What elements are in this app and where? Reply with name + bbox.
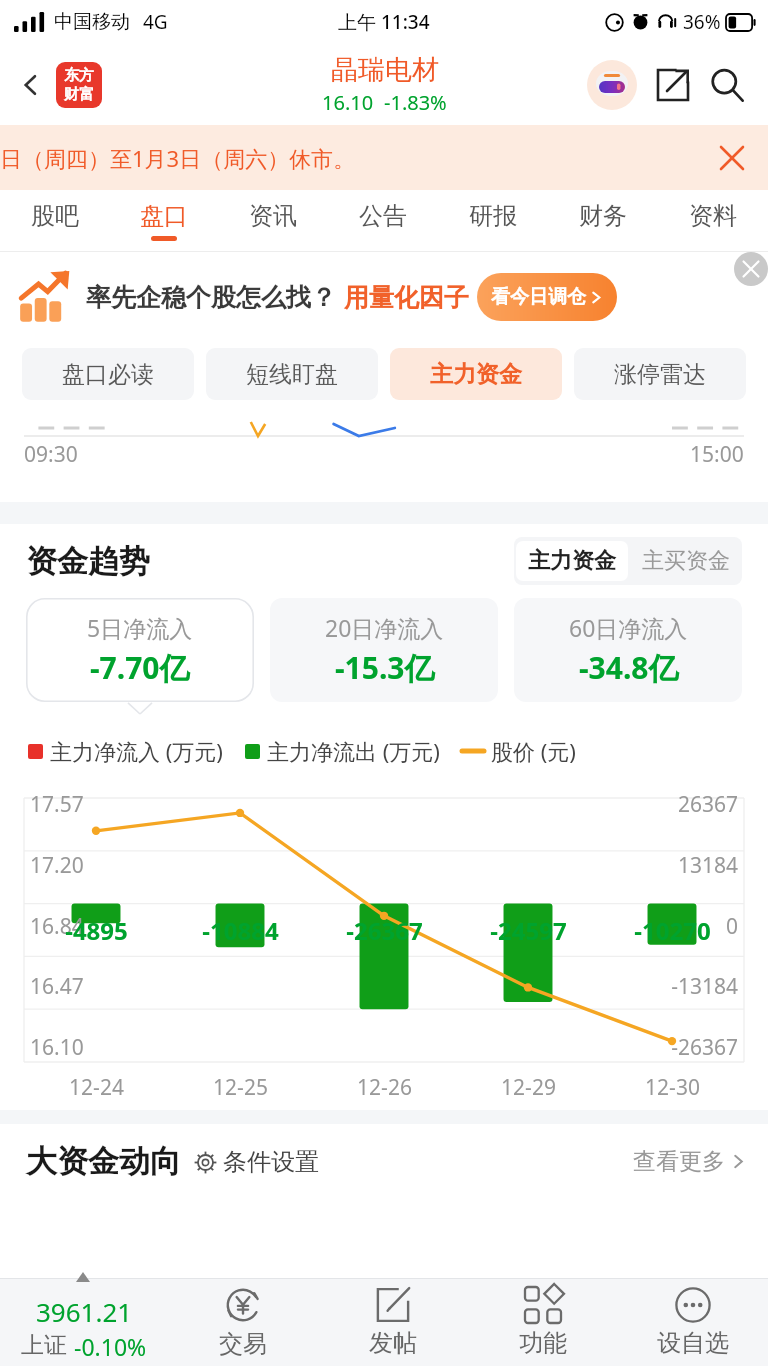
button[interactable]: 20日净流入 — [270, 598, 498, 702]
staticText: 交易 — [219, 1329, 267, 1359]
button[interactable]: Close notice — [712, 138, 752, 178]
button[interactable]: 发帖 — [318, 1279, 468, 1366]
button[interactable]: 盘口必读 — [22, 348, 194, 400]
staticText: 东方 — [64, 66, 94, 85]
button[interactable]: 3961.21 — [0, 1279, 168, 1366]
staticText: 日（周四）至1月3日（周六）休市。 — [0, 143, 356, 173]
staticText: -26367 — [346, 914, 423, 947]
staticText: 盘口 — [140, 201, 188, 231]
button[interactable]: 主力资金 — [390, 348, 562, 400]
staticText: 20日净流入 — [325, 612, 444, 643]
staticText: 盘口必读 — [62, 360, 154, 389]
button[interactable]: 60日净流入 — [514, 598, 742, 702]
button[interactable]: 率先企稳个股怎么找？ — [18, 252, 754, 342]
button[interactable]: 资料 — [658, 190, 768, 252]
staticText: 设自选 — [657, 1328, 729, 1358]
staticText: 股吧 — [31, 201, 79, 231]
button[interactable]: 公告 — [328, 190, 438, 252]
staticText: 主力净流出 (万元) — [267, 736, 440, 766]
button[interactable]: 交易 — [168, 1279, 318, 1366]
staticText: -13184 — [671, 972, 738, 1001]
staticText: 资金趋势 — [26, 542, 150, 581]
staticText: -7.70亿 — [90, 647, 190, 688]
staticText: 26367 — [677, 790, 738, 819]
staticText: 17.57 — [30, 790, 84, 819]
staticText: 0 — [725, 912, 738, 941]
button[interactable]: Share — [648, 60, 698, 110]
staticText: -10270 — [634, 914, 711, 947]
staticText: 短线盯盘 — [246, 360, 338, 389]
staticText: 晶瑞电材 — [331, 53, 439, 87]
staticText: 股价 (元) — [491, 736, 576, 766]
button[interactable]: Close ad — [734, 252, 768, 286]
staticText: 16.10 — [30, 1033, 84, 1062]
button[interactable]: 设自选 — [618, 1279, 768, 1366]
button[interactable]: 5日净流入 — [26, 598, 254, 702]
staticText: 主买资金 — [642, 547, 730, 575]
button[interactable]: Search — [702, 60, 752, 110]
staticText: -1.83% — [384, 89, 447, 116]
staticText: -10884 — [202, 914, 279, 947]
staticText: 16.84 — [30, 912, 84, 941]
button[interactable]: 东方财富 — [56, 62, 102, 108]
button[interactable]: 盘口 — [109, 190, 218, 252]
staticText: 主力资金 — [528, 547, 616, 575]
button[interactable]: 查看更多 — [633, 1147, 746, 1176]
staticText: 发帖 — [369, 1328, 417, 1358]
staticText: -24597 — [490, 914, 567, 947]
button[interactable]: Back — [8, 62, 54, 108]
staticText: 主力资金 — [430, 360, 522, 389]
staticText: 16.10 — [322, 89, 374, 116]
button[interactable]: 条件设置 — [193, 1147, 319, 1177]
staticText: -34.8亿 — [579, 647, 679, 688]
staticText: 看今日调仓 — [491, 285, 586, 309]
staticText: 09:30 — [24, 440, 78, 469]
staticText: 条件设置 — [223, 1147, 319, 1177]
staticText: 上午 11:34 — [338, 9, 430, 35]
staticText: 财务 — [579, 201, 627, 231]
staticText: 资料 — [689, 201, 737, 231]
staticText: -26367 — [671, 1033, 738, 1062]
button[interactable]: 股吧 — [0, 190, 109, 252]
staticText: 大资金动向 — [26, 1142, 181, 1181]
staticText: -0.10% — [74, 1331, 147, 1362]
staticText: 财富 — [64, 85, 94, 104]
button[interactable]: 研报 — [438, 190, 548, 252]
staticText: 研报 — [469, 201, 517, 231]
staticText: 4G — [143, 9, 168, 35]
staticText: 16.47 — [30, 972, 84, 1001]
button[interactable]: 看今日调仓 — [491, 273, 603, 321]
button[interactable]: 资讯 — [218, 190, 328, 252]
staticText: 率先企稳个股怎么找？ — [86, 282, 336, 313]
staticText: 12-30 — [645, 1073, 700, 1102]
staticText: 12-26 — [357, 1073, 412, 1102]
staticText: 涨停雷达 — [614, 360, 706, 389]
staticText: 15:00 — [690, 440, 744, 469]
staticText: 主力净流入 (万元) — [50, 736, 223, 766]
button[interactable]: 功能 — [468, 1279, 618, 1366]
staticText: 60日净流入 — [569, 612, 688, 643]
staticText: -4895 — [65, 914, 128, 947]
staticText: 功能 — [519, 1328, 567, 1358]
staticText: 查看更多 — [633, 1147, 725, 1176]
button[interactable]: 短线盯盘 — [206, 348, 378, 400]
staticText: 用量化因子 — [344, 282, 469, 313]
staticText: 资讯 — [249, 201, 297, 231]
staticText: 17.20 — [30, 851, 84, 880]
button[interactable]: 主买资金 — [642, 539, 730, 583]
button[interactable]: 财务 — [548, 190, 658, 252]
staticText: 公告 — [359, 201, 407, 231]
staticText: 5日净流入 — [87, 612, 193, 643]
staticText: 36% — [683, 9, 721, 35]
staticText: -15.3亿 — [335, 647, 435, 688]
staticText: 上证 — [21, 1331, 67, 1360]
staticText: 13184 — [677, 851, 738, 880]
staticText: 12-29 — [501, 1073, 556, 1102]
staticText: 中国移动 — [54, 10, 130, 34]
button[interactable]: 主力资金 — [528, 541, 616, 581]
staticText: 12-25 — [213, 1073, 268, 1102]
button[interactable]: 涨停雷达 — [574, 348, 746, 400]
staticText: 3961.21 — [36, 1294, 133, 1329]
staticText: 12-24 — [69, 1073, 124, 1102]
button[interactable]: AI assistant — [586, 59, 638, 111]
